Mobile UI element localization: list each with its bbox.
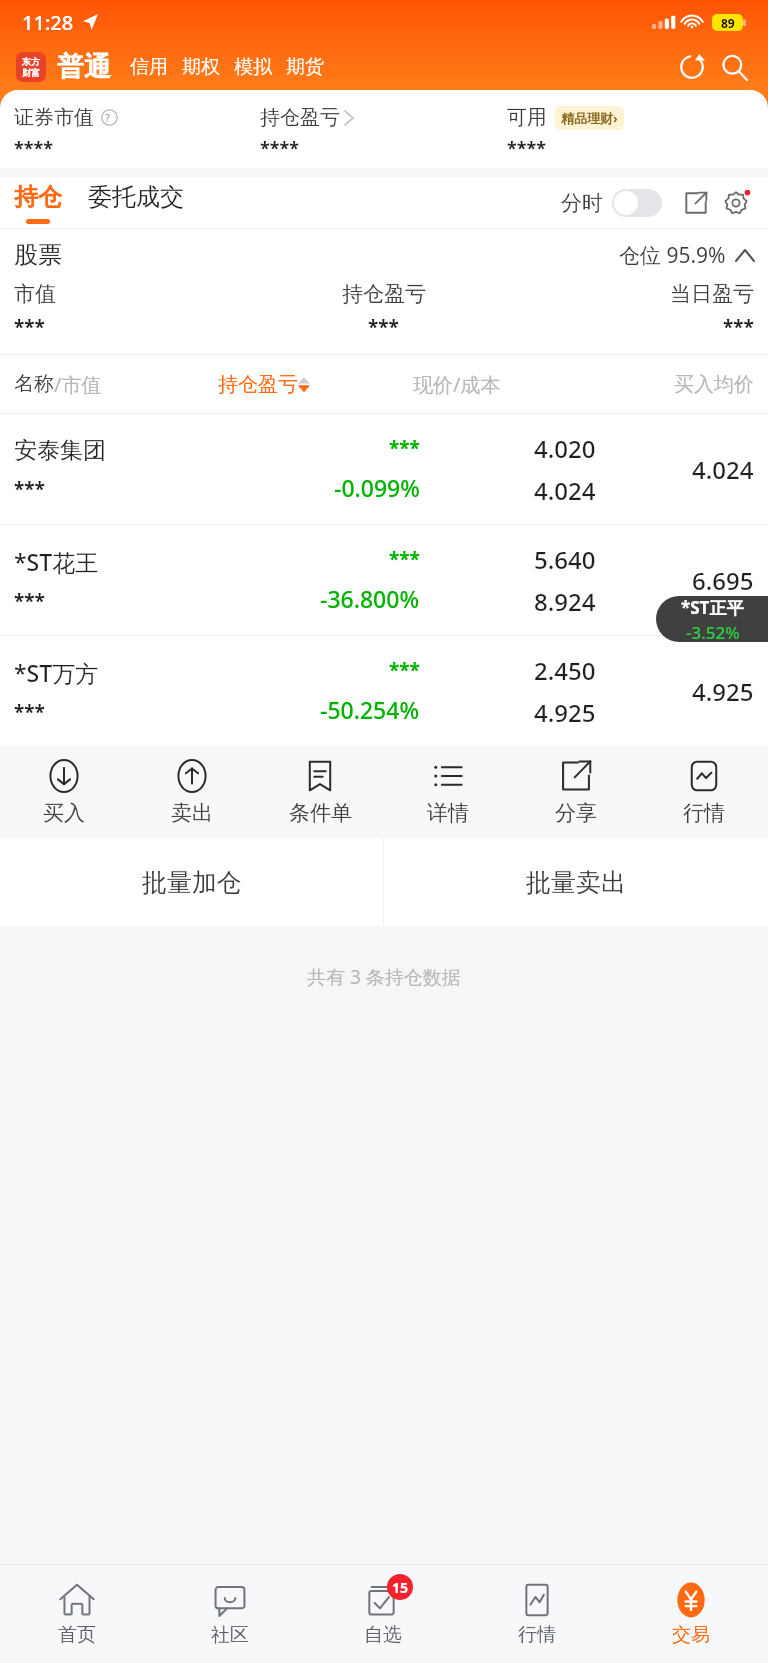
button[interactable]: 分时 <box>561 189 662 217</box>
staticText: 条件单 <box>289 800 352 826</box>
staticText: 委托成交 <box>88 182 184 212</box>
staticText: 自选 <box>364 1623 402 1647</box>
staticText: 2.450 <box>534 654 596 687</box>
staticText: 行情 <box>518 1623 556 1647</box>
button[interactable]: 条件单 <box>256 746 384 838</box>
staticText: 安泰集团 <box>14 436 106 465</box>
staticText: 分享 <box>555 800 597 826</box>
staticText: 首页 <box>58 1623 96 1647</box>
button[interactable]: 东方 <box>16 52 46 82</box>
staticText: 行情 <box>683 800 725 826</box>
button[interactable]: 普通 <box>57 50 111 84</box>
button[interactable]: 交易 <box>614 1565 768 1663</box>
button[interactable]: 分享 <box>512 746 640 838</box>
staticText: 市值 <box>14 281 56 307</box>
staticText: /市值 <box>54 371 102 398</box>
button[interactable]: *ST花王 <box>0 524 768 635</box>
staticText: 4.020 <box>534 432 596 465</box>
staticText: 5.640 <box>534 543 596 576</box>
staticText: ? <box>105 110 110 125</box>
button[interactable]: 首页 <box>0 1565 153 1663</box>
staticText: 详情 <box>427 800 469 826</box>
staticText: *** <box>389 546 420 572</box>
staticText: *** <box>14 476 45 502</box>
staticText: 4.925 <box>534 696 596 729</box>
staticText: -50.254% <box>320 694 420 725</box>
button[interactable]: *ST正平 <box>656 596 768 642</box>
staticText: **** <box>507 136 547 161</box>
staticText: 4.024 <box>534 474 596 507</box>
button[interactable]: 委托成交 <box>88 182 184 224</box>
staticText: *** <box>14 588 45 614</box>
staticText: 买入均价 <box>674 372 754 397</box>
staticText: **** <box>14 136 54 161</box>
button[interactable]: 批量卖出 <box>384 838 768 926</box>
staticText: *** <box>14 314 45 340</box>
button[interactable]: 买入 <box>0 746 128 838</box>
button[interactable]: 批量加仓 <box>0 838 383 926</box>
staticText: 可用 <box>507 105 547 130</box>
staticText: 11:28 <box>22 9 74 36</box>
button[interactable]: 社区 <box>153 1565 306 1663</box>
button[interactable]: 股票 <box>14 229 754 281</box>
staticText: 89 <box>721 15 735 31</box>
staticText: 财富 <box>22 67 40 78</box>
button[interactable]: 卖出 <box>128 746 256 838</box>
button[interactable]: 行情 <box>640 746 768 838</box>
staticText: *ST花王 <box>14 546 99 577</box>
staticText: 15 <box>392 1578 409 1597</box>
staticText: 共有 3 条持仓数据 <box>307 964 461 990</box>
staticText: 买入 <box>43 800 85 826</box>
button[interactable]: 精品理财› <box>555 106 624 130</box>
button[interactable]: 模拟 <box>227 55 279 79</box>
button[interactable]: 证券市值 <box>14 105 260 161</box>
staticText: 批量加仓 <box>142 867 242 898</box>
staticText: *ST万方 <box>14 657 99 688</box>
button[interactable]: 期权 <box>175 55 227 79</box>
staticText: 持仓盈亏 <box>260 105 340 130</box>
staticText: 8.924 <box>534 585 596 618</box>
staticText: 现价/成本 <box>413 371 501 398</box>
button[interactable]: 安泰集团 <box>0 413 768 524</box>
staticText: *** <box>723 314 754 340</box>
staticText: -0.099% <box>334 472 420 503</box>
button[interactable]: Settings <box>718 185 754 221</box>
button[interactable]: 行情 <box>460 1565 614 1663</box>
staticText: 持仓 <box>14 182 62 212</box>
staticText: 卖出 <box>171 800 213 826</box>
button[interactable]: 信用 <box>123 55 175 79</box>
staticText: *** <box>389 435 420 461</box>
staticText: -3.52% <box>686 621 740 642</box>
staticText: 4.925 <box>692 675 754 708</box>
button[interactable]: 持仓 <box>14 182 62 224</box>
button[interactable]: Expand <box>678 185 714 221</box>
button[interactable]: 持仓盈亏 <box>260 105 507 161</box>
button[interactable]: 持仓盈亏 <box>218 372 413 397</box>
staticText: 精品理财› <box>561 109 618 127</box>
staticText: 名称 <box>14 371 54 396</box>
button[interactable]: 期货 <box>279 55 331 79</box>
button[interactable]: 15 <box>306 1565 460 1663</box>
staticText: 当日盈亏 <box>670 281 754 307</box>
staticText: 6.695 <box>692 564 754 597</box>
staticText: *** <box>14 699 45 725</box>
button[interactable]: *ST万方 <box>0 635 768 746</box>
staticText: 批量卖出 <box>526 867 626 898</box>
staticText: 证券市值 <box>14 105 94 130</box>
staticText: 仓位 95.9% <box>619 241 726 270</box>
staticText: **** <box>260 136 300 161</box>
staticText: *ST正平 <box>681 596 744 619</box>
staticText: *** <box>389 657 420 683</box>
staticText: 持仓盈亏 <box>218 372 298 397</box>
staticText: 持仓盈亏 <box>342 281 426 307</box>
staticText: 分时 <box>561 190 603 216</box>
staticText: 社区 <box>211 1623 249 1647</box>
staticText: 4.024 <box>692 453 754 486</box>
staticText: 东方 <box>22 56 40 67</box>
staticText: *** <box>368 314 399 340</box>
staticText: -36.800% <box>320 583 420 614</box>
staticText: 交易 <box>672 1623 710 1647</box>
button[interactable]: Search <box>716 49 752 85</box>
button[interactable]: 详情 <box>384 746 512 838</box>
button[interactable]: Refresh <box>674 49 710 85</box>
